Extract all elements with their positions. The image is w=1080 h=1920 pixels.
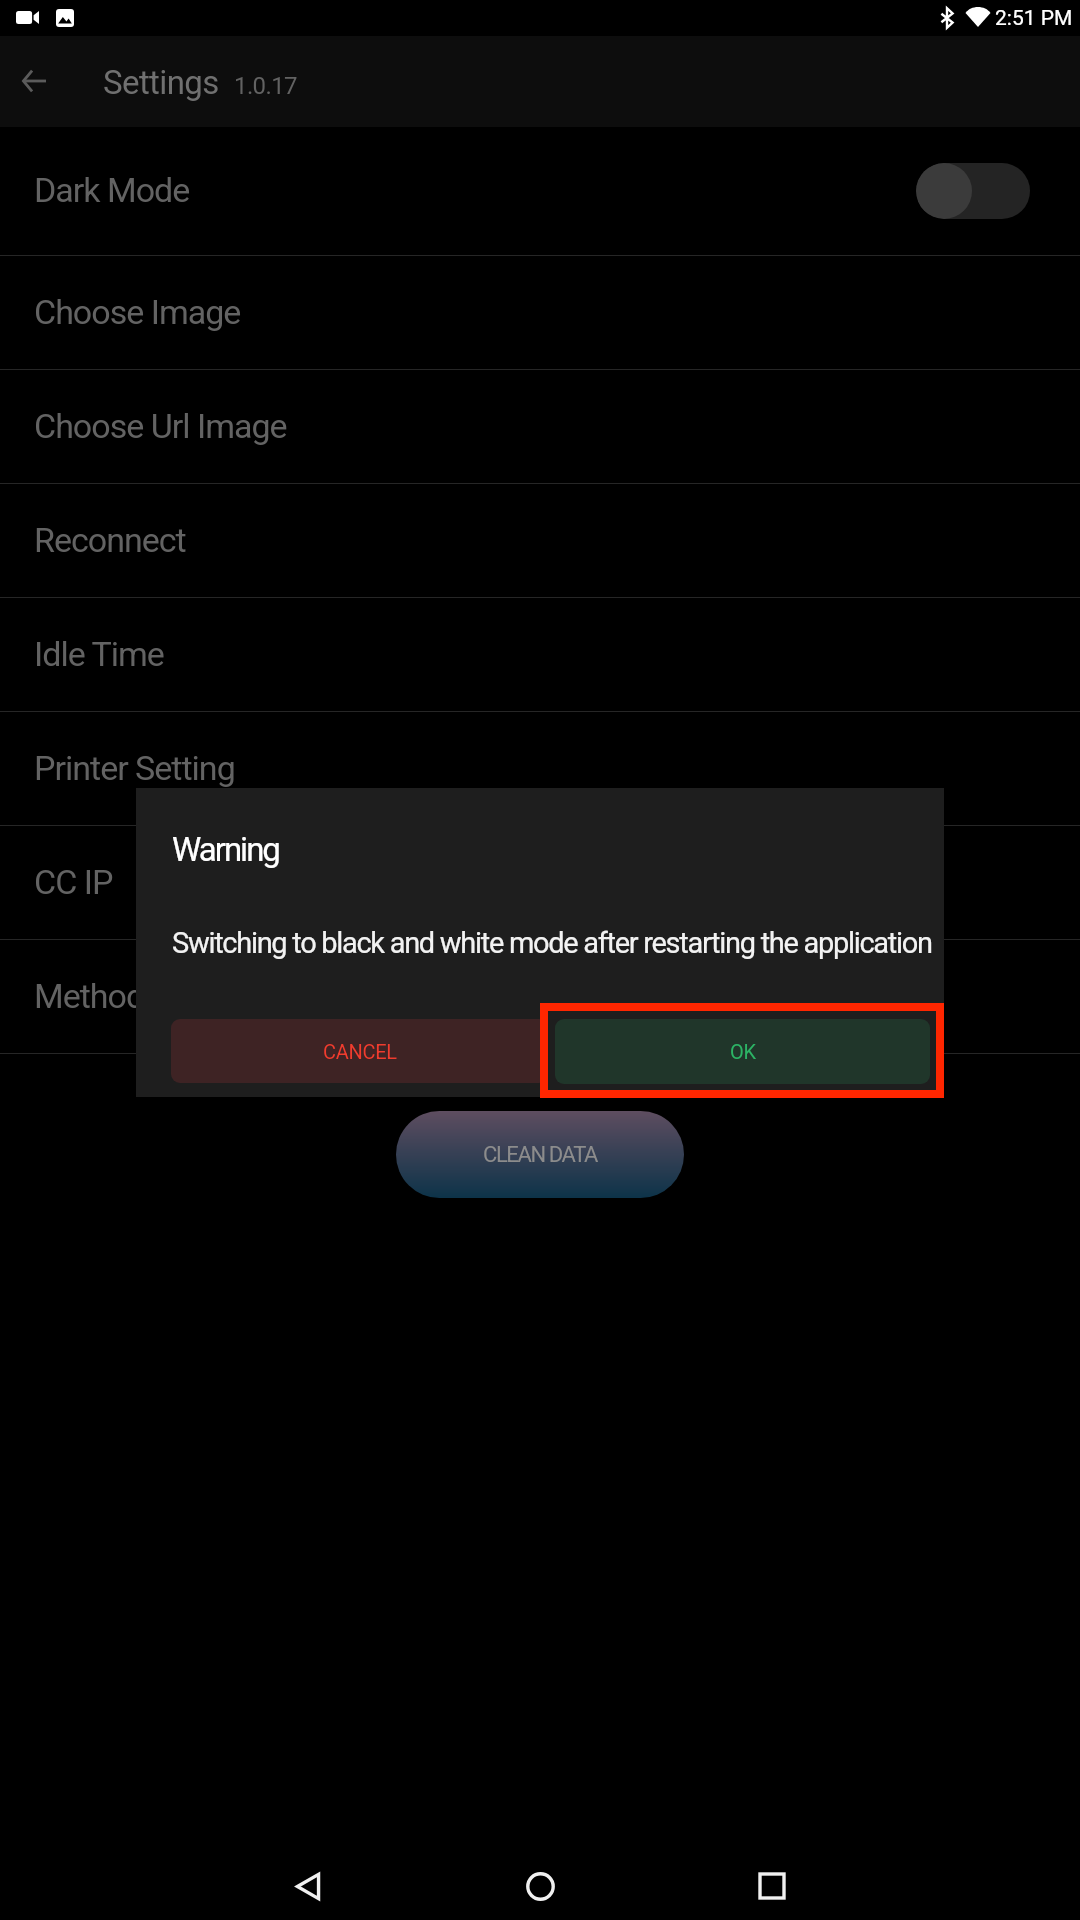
- staticText: Idle Time: [34, 634, 164, 674]
- staticText: CC IP: [34, 862, 113, 902]
- button[interactable]: Choose Url Image: [0, 370, 1080, 483]
- staticText: Printer Setting: [34, 748, 235, 788]
- button[interactable]: OK: [555, 1019, 930, 1084]
- button[interactable]: Back: [284, 1862, 332, 1910]
- other: Screenshot: [56, 9, 74, 27]
- button[interactable]: CC IP: [0, 826, 1080, 939]
- button[interactable]: Dark Mode toggle: [916, 163, 1030, 219]
- button[interactable]: CLEAN DATA: [396, 1111, 684, 1198]
- button[interactable]: Reconnect: [0, 484, 1080, 597]
- button[interactable]: Home: [516, 1862, 564, 1910]
- button[interactable]: CANCEL: [171, 1019, 548, 1083]
- staticText: Reconnect: [34, 520, 186, 560]
- button[interactable]: Back: [9, 56, 60, 107]
- other: Bluetooth on: [940, 8, 954, 28]
- staticText: Dark Mode: [34, 170, 190, 210]
- button[interactable]: Idle Time: [0, 598, 1080, 711]
- other: Screen recording: [16, 11, 39, 24]
- button[interactable]: Printer Setting: [0, 712, 1080, 825]
- staticText: 2:51 PM: [995, 6, 1073, 31]
- staticText: Warning: [172, 830, 279, 869]
- staticText: OK: [730, 1040, 756, 1063]
- button[interactable]: Method: [0, 940, 1080, 1053]
- other: Wi-Fi connected: [965, 7, 991, 27]
- button[interactable]: Choose Image: [0, 256, 1080, 369]
- button[interactable]: Recents: [748, 1862, 796, 1910]
- staticText: 1.0.17: [234, 72, 298, 100]
- staticText: Switching to black and white mode after …: [172, 926, 932, 960]
- staticText: Choose Url Image: [34, 406, 287, 446]
- staticText: Choose Image: [34, 292, 241, 332]
- button[interactable]: Dark Mode: [0, 127, 1080, 255]
- staticText: CLEAN DATA: [483, 1142, 597, 1168]
- staticText: Method: [34, 976, 145, 1016]
- staticText: CANCEL: [323, 1040, 397, 1063]
- staticText: Settings: [103, 63, 219, 102]
